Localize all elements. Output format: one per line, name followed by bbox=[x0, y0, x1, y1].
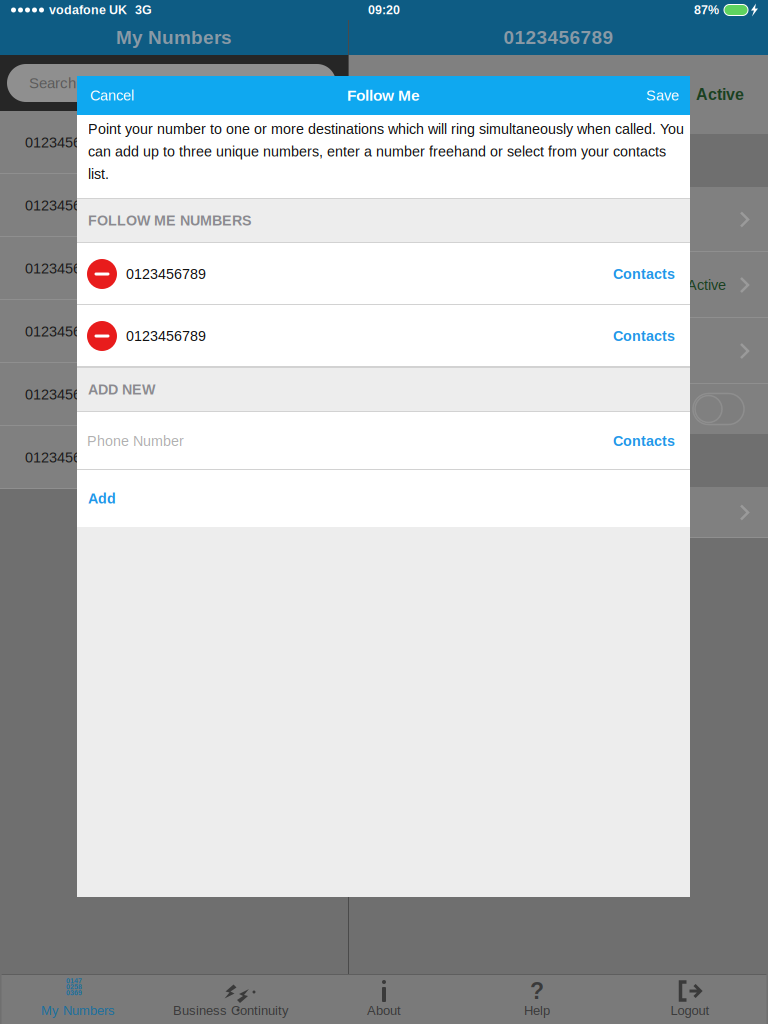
staticText: 0123456789 bbox=[25, 134, 105, 151]
staticText: Contacts bbox=[613, 266, 675, 282]
button[interactable]: 0123456789 bbox=[0, 111, 348, 174]
staticText: 0123456789 bbox=[25, 197, 105, 214]
staticText: vodafone UK bbox=[49, 3, 127, 17]
staticText: 0123456789 bbox=[25, 260, 105, 277]
staticText: 0147 bbox=[66, 977, 82, 985]
staticText: Contacts bbox=[613, 328, 675, 344]
staticText: 0369 bbox=[66, 989, 82, 997]
button[interactable]: About bbox=[307, 974, 460, 1024]
button[interactable]: Business Continuity bbox=[154, 974, 307, 1024]
button[interactable]: 0123456789 bbox=[0, 174, 348, 237]
button[interactable]: Time of Day bbox=[349, 318, 768, 384]
staticText: About bbox=[367, 1003, 401, 1018]
staticText: My Numbers bbox=[41, 1003, 115, 1018]
staticText: Follow Me bbox=[347, 87, 420, 104]
button[interactable]: Do Not Disturb toggle bbox=[693, 393, 744, 424]
staticText: Active bbox=[696, 86, 744, 103]
button[interactable]: Remove number bbox=[87, 259, 117, 289]
staticText: Search bbox=[29, 75, 76, 91]
button[interactable]: 0147 bbox=[1, 974, 154, 1024]
button[interactable]: Add bbox=[77, 470, 690, 527]
staticText: 3G bbox=[135, 3, 152, 17]
staticText: 0123456789 bbox=[126, 328, 206, 344]
staticText: Contacts bbox=[613, 433, 675, 449]
staticText: FOLLOW ME NUMBERS bbox=[88, 212, 252, 228]
button[interactable]: Follow Me bbox=[349, 187, 768, 252]
staticText: Business Continuity bbox=[173, 1003, 289, 1018]
button[interactable]: ? bbox=[460, 974, 613, 1024]
staticText: Logout bbox=[670, 1003, 709, 1018]
staticText: 0123456789 bbox=[126, 266, 206, 282]
staticText: 0258 bbox=[66, 983, 82, 991]
button[interactable]: Settings bbox=[349, 487, 768, 538]
button[interactable]: Cancel bbox=[90, 87, 134, 104]
staticText: Point your number to one or more destina… bbox=[88, 121, 684, 182]
staticText: ADD NEW bbox=[88, 381, 155, 397]
staticText: My Numbers bbox=[116, 27, 232, 48]
button[interactable]: 0123456789 bbox=[0, 363, 348, 426]
staticText: 87% bbox=[694, 3, 719, 17]
staticText: ? bbox=[530, 978, 544, 1004]
staticText: Cancel bbox=[90, 87, 134, 104]
staticText: 0123456789 bbox=[25, 323, 105, 340]
staticText: 09:20 bbox=[368, 3, 400, 17]
button[interactable]: 0123456789 bbox=[0, 237, 348, 300]
staticText: Status bbox=[369, 86, 410, 103]
staticText: Add bbox=[88, 490, 116, 506]
button[interactable]: Contacts bbox=[613, 328, 675, 344]
staticText: 0123456789 bbox=[25, 386, 105, 403]
staticText: Active bbox=[687, 277, 726, 293]
button[interactable]: 0123456789 bbox=[0, 300, 348, 363]
button[interactable]: Divert bbox=[349, 252, 768, 318]
staticText: Save bbox=[646, 87, 679, 104]
staticText: 0123456789 bbox=[25, 449, 105, 466]
staticText: Call Forwarding bbox=[369, 153, 472, 168]
staticText: Phone Number bbox=[87, 433, 184, 449]
button[interactable]: Contacts bbox=[613, 266, 675, 282]
staticText: Do Not Disturb bbox=[369, 401, 462, 417]
button[interactable]: Logout bbox=[613, 974, 766, 1024]
button[interactable]: Contacts bbox=[613, 433, 675, 449]
button[interactable]: 0123456789 bbox=[0, 426, 348, 489]
staticText: 0123456789 bbox=[503, 27, 613, 48]
button[interactable]: Save bbox=[646, 87, 679, 104]
button[interactable]: Remove number bbox=[87, 321, 117, 351]
staticText: Help bbox=[524, 1003, 550, 1018]
